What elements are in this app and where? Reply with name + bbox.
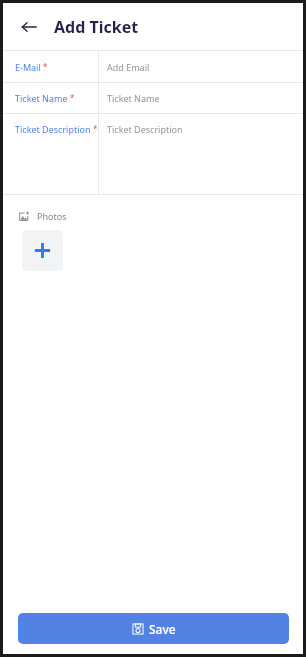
staticText: Ticket Name [107,92,160,104]
staticText: Ticket Name [15,92,68,104]
button[interactable]: Add photo [22,230,63,271]
staticText: Add Email [107,61,150,73]
staticText: Save [149,621,176,637]
button[interactable]: Ticket Description [3,114,303,194]
staticText: Ticket Description [107,123,183,135]
button[interactable]: Ticket Name [3,83,303,113]
button[interactable]: Back [13,11,45,43]
staticText: Add Ticket [54,16,139,38]
staticText: * [43,61,48,72]
staticText: Ticket Description [15,123,91,135]
button[interactable]: E-Mail [3,51,303,82]
button[interactable]: Save [18,613,289,644]
staticText: E-Mail [15,61,41,73]
staticText: Photos [37,210,67,222]
staticText: * [70,92,75,103]
staticText: * [93,123,98,134]
